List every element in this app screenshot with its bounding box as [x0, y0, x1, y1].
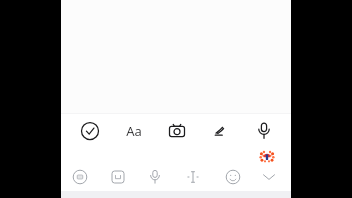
button[interactable]: Sticker: [105, 164, 131, 190]
button[interactable]: Collapse: [256, 164, 282, 190]
button[interactable]: Emoji: [220, 164, 246, 190]
button[interactable]: Draw: [204, 116, 234, 146]
button[interactable]: Done: [75, 116, 105, 146]
staticText: Aa: [126, 122, 142, 140]
button[interactable]: Cursor style: [256, 146, 278, 168]
button[interactable]: Keyboard: [67, 164, 93, 190]
button[interactable]: Text cursor: [180, 164, 206, 190]
button[interactable]: Aa: [119, 116, 149, 146]
button[interactable]: Microphone: [142, 164, 168, 190]
button[interactable]: Voice input: [249, 116, 279, 146]
button[interactable]: Camera: [162, 116, 192, 146]
